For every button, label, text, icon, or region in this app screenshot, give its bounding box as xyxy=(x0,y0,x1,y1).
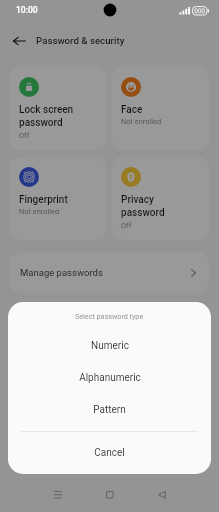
button[interactable]: Pattern xyxy=(8,394,211,426)
button[interactable]: Fingerprint xyxy=(10,157,106,240)
staticText: Fingerprint xyxy=(19,194,68,206)
button[interactable]: Cancel xyxy=(8,432,211,474)
button[interactable]: Privacy password xyxy=(112,157,209,240)
button[interactable]: Back xyxy=(148,480,176,508)
staticText: Lock screen password xyxy=(19,104,74,129)
button[interactable]: Face xyxy=(112,67,209,150)
staticText: Cancel xyxy=(94,447,125,459)
staticText: Select password type xyxy=(75,312,144,320)
button[interactable]: Home xyxy=(96,480,124,508)
staticText: Face xyxy=(121,104,143,116)
button[interactable]: Numeric xyxy=(8,330,211,362)
staticText: Numeric xyxy=(91,340,129,352)
staticText: Manage passwords xyxy=(20,267,103,278)
staticText: Privacy password xyxy=(121,194,165,219)
button[interactable]: Manage passwords xyxy=(10,252,209,293)
button[interactable]: Back xyxy=(6,27,34,55)
staticText: Off xyxy=(19,131,30,140)
button[interactable]: Alphanumeric xyxy=(8,362,211,394)
button[interactable]: Recent apps xyxy=(44,480,72,508)
staticText: Not enrolled xyxy=(121,117,162,126)
staticText: Not enrolled xyxy=(19,207,60,216)
staticText: Password & security xyxy=(36,35,125,46)
button[interactable]: Lock screen password xyxy=(10,67,106,150)
staticText: Pattern xyxy=(93,404,126,416)
staticText: Off xyxy=(121,221,132,230)
staticText: Alphanumeric xyxy=(79,372,141,384)
staticText: 10:00 xyxy=(16,5,38,15)
